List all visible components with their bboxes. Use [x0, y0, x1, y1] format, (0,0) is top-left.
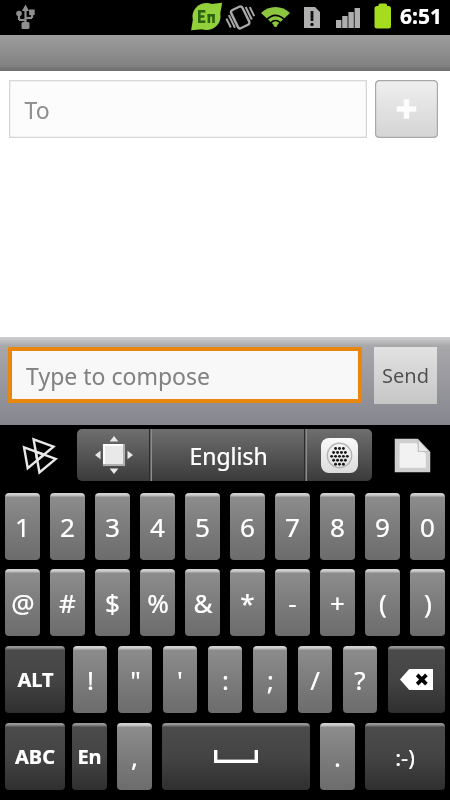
- button[interactable]: ': [163, 646, 197, 713]
- button[interactable]: !: [73, 646, 107, 713]
- button[interactable]: 7: [275, 493, 310, 560]
- staticText: ": [130, 662, 141, 697]
- button[interactable]: 8: [320, 493, 355, 560]
- staticText: :: [222, 662, 229, 697]
- button[interactable]: 6: [230, 493, 265, 560]
- staticText: English: [189, 440, 268, 471]
- staticText: ,: [131, 739, 138, 774]
- button[interactable]: Switch input method: [380, 429, 445, 481]
- button[interactable]: ": [118, 646, 152, 713]
- button[interactable]: @: [5, 569, 40, 636]
- button[interactable]: +: [320, 569, 355, 636]
- staticText: !: [87, 662, 94, 697]
- staticText: 6:51: [400, 2, 442, 31]
- staticText: 3: [105, 509, 120, 544]
- staticText: Send: [382, 362, 429, 389]
- button[interactable]: Type to compose: [12, 351, 358, 399]
- button[interactable]: :: [208, 646, 242, 713]
- staticText: Type to compose: [26, 360, 210, 391]
- button[interactable]: *: [230, 569, 265, 636]
- button[interactable]: ALT: [5, 646, 65, 713]
- staticText: 8: [330, 509, 345, 544]
- button[interactable]: En: [72, 723, 107, 790]
- button[interactable]: ,: [117, 723, 152, 790]
- button[interactable]: 9: [365, 493, 400, 560]
- staticText: &: [193, 585, 213, 620]
- staticText: ;: [267, 662, 274, 697]
- button[interactable]: 2: [50, 493, 85, 560]
- button[interactable]: ;: [253, 646, 287, 713]
- staticText: ?: [354, 662, 366, 697]
- button[interactable]: Keyboard layout: [307, 429, 372, 481]
- button[interactable]: ABC: [5, 723, 65, 790]
- button[interactable]: -: [275, 569, 310, 636]
- staticText: -: [288, 585, 297, 620]
- button[interactable]: Add recipient: [375, 80, 438, 138]
- staticText: +: [330, 585, 345, 620]
- button[interactable]: Swype: [12, 429, 66, 481]
- staticText: @: [11, 585, 35, 620]
- button[interactable]: ?: [343, 646, 377, 713]
- staticText: 9: [375, 509, 390, 544]
- button[interactable]: Move cursor: [77, 429, 150, 481]
- staticText: %: [147, 585, 169, 620]
- staticText: 2: [60, 509, 75, 544]
- button[interactable]: 4: [140, 493, 175, 560]
- button[interactable]: 1: [5, 493, 40, 560]
- staticText: (: [379, 585, 387, 620]
- staticText: *: [240, 585, 255, 620]
- button[interactable]: %: [140, 569, 175, 636]
- staticText: To: [24, 94, 50, 125]
- button[interactable]: /: [298, 646, 332, 713]
- staticText: 7: [285, 509, 300, 544]
- button[interactable]: 0: [410, 493, 445, 560]
- staticText: 0: [420, 509, 435, 544]
- button[interactable]: Space: [162, 723, 310, 790]
- staticText: 1: [15, 509, 30, 544]
- button[interactable]: &: [185, 569, 220, 636]
- button[interactable]: (: [365, 569, 400, 636]
- staticText: .: [334, 739, 341, 774]
- button[interactable]: To: [9, 80, 367, 138]
- button[interactable]: 5: [185, 493, 220, 560]
- staticText: #: [59, 585, 76, 620]
- button[interactable]: ): [410, 569, 445, 636]
- staticText: ': [177, 662, 183, 697]
- staticText: ): [424, 585, 432, 620]
- button[interactable]: #: [50, 569, 85, 636]
- staticText: ALT: [17, 666, 54, 693]
- button[interactable]: :-): [365, 723, 445, 790]
- staticText: 6: [240, 509, 255, 544]
- button[interactable]: .: [320, 723, 355, 790]
- button[interactable]: 3: [95, 493, 130, 560]
- staticText: En: [77, 743, 102, 770]
- button[interactable]: Backspace: [388, 646, 445, 713]
- staticText: $: [105, 585, 120, 620]
- staticText: :-): [395, 742, 415, 772]
- button[interactable]: $: [95, 569, 130, 636]
- staticText: 4: [150, 509, 165, 544]
- staticText: ABC: [15, 743, 55, 770]
- button[interactable]: Send: [374, 347, 437, 404]
- button[interactable]: English: [152, 429, 304, 481]
- staticText: /: [310, 662, 320, 697]
- staticText: 5: [195, 509, 210, 544]
